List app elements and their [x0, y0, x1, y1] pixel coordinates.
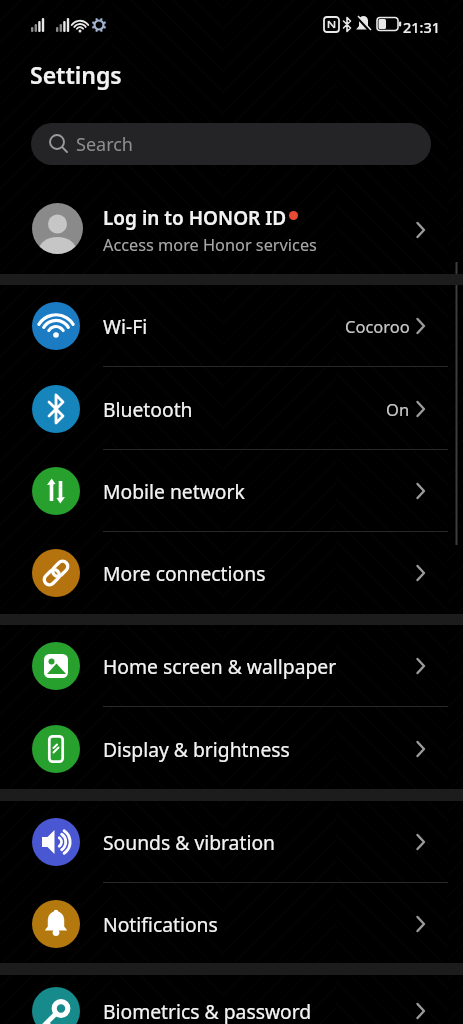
button[interactable]: Home screen & wallpaper	[0, 625, 463, 707]
staticText: Biometrics & password	[103, 998, 312, 1024]
staticText: Display & brightness	[103, 736, 290, 762]
staticText: Bluetooth	[103, 396, 193, 422]
staticText: Settings	[30, 59, 122, 90]
staticText: 21:31	[403, 17, 441, 37]
staticText: Notifications	[103, 911, 218, 937]
staticText: Wi-Fi	[103, 313, 148, 339]
button[interactable]: Notifications	[0, 883, 463, 965]
button[interactable]: Mobile network	[0, 450, 463, 532]
button[interactable]: Bluetooth	[0, 368, 463, 450]
staticText: Mobile network	[103, 478, 245, 504]
staticText: Log in to HONOR ID	[103, 205, 287, 231]
staticText: More connections	[103, 560, 266, 586]
button[interactable]: Search	[31, 123, 431, 165]
staticText: Search	[76, 132, 133, 157]
staticText: On	[386, 398, 410, 420]
button[interactable]: Sounds & vibration	[0, 801, 463, 883]
button[interactable]: More connections	[0, 532, 463, 614]
button[interactable]: Log in to HONOR ID	[0, 188, 463, 272]
staticText: Home screen & wallpaper	[103, 653, 337, 679]
staticText: Cocoroo	[345, 315, 410, 337]
button[interactable]: Wi-Fi	[0, 285, 463, 367]
staticText: Sounds & vibration	[103, 829, 275, 855]
staticText: Access more Honor services	[103, 234, 317, 256]
button[interactable]: Biometrics & password	[0, 970, 463, 1024]
button[interactable]: Display & brightness	[0, 708, 463, 790]
